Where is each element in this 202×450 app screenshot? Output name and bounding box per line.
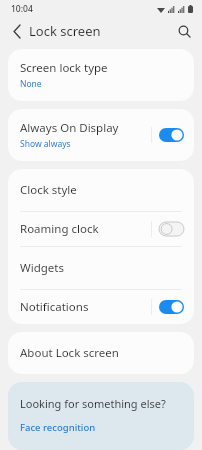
staticText: Face recognition bbox=[20, 421, 96, 434]
button[interactable]: Always On Display bbox=[8, 109, 194, 161]
staticText: Show always bbox=[20, 138, 71, 150]
staticText: Notifications bbox=[20, 299, 151, 315]
button[interactable]: On bbox=[159, 300, 184, 314]
staticText: Always On Display bbox=[20, 120, 119, 136]
staticText: Lock screen bbox=[29, 22, 101, 40]
button[interactable]: On bbox=[159, 128, 184, 142]
staticText: Clock style bbox=[20, 182, 77, 198]
button[interactable]: Clock style bbox=[8, 169, 194, 211]
staticText: None bbox=[20, 78, 42, 90]
button[interactable]: Back bbox=[6, 20, 28, 42]
button[interactable]: About Lock screen bbox=[8, 332, 194, 374]
staticText: Looking for something else? bbox=[20, 396, 166, 411]
button[interactable]: Off bbox=[159, 222, 184, 236]
button[interactable]: Face recognition bbox=[20, 421, 96, 434]
staticText: About Lock screen bbox=[20, 345, 119, 361]
staticText: Screen lock type bbox=[20, 60, 108, 76]
staticText: Roaming clock bbox=[20, 221, 151, 237]
button[interactable]: Search bbox=[173, 20, 195, 42]
button[interactable]: Roaming clock bbox=[8, 212, 194, 246]
staticText: 10:04 bbox=[11, 3, 33, 15]
button[interactable]: Screen lock type bbox=[8, 49, 194, 101]
button[interactable]: Notifications bbox=[8, 290, 194, 324]
staticText: Widgets bbox=[20, 260, 64, 276]
button[interactable]: Widgets bbox=[8, 247, 194, 289]
